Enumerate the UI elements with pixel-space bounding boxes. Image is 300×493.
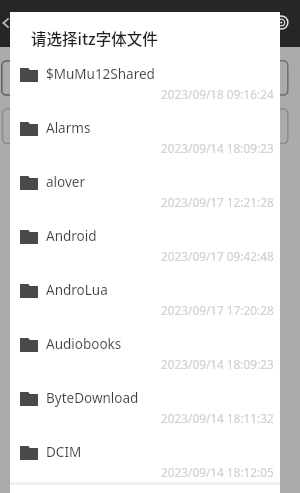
staticText: 2023/09/17 09:42:48: [161, 248, 274, 264]
button[interactable]: Account: [270, 11, 293, 34]
staticText: 2023/09/14 18:11:32: [161, 410, 274, 426]
staticText: DCIM: [46, 443, 82, 461]
staticText: 2023/09/14 18:09:23: [161, 356, 274, 372]
staticText: Android: [46, 227, 97, 245]
button[interactable]: alover: [10, 169, 280, 223]
staticText: 2023/09/14 18:09:23: [161, 140, 274, 156]
button[interactable]: ByteDownload: [10, 385, 280, 439]
staticText: Audiobooks: [46, 335, 122, 353]
staticText: 请选择itz字体文件: [31, 27, 158, 49]
staticText: 2023/09/17 12:21:28: [161, 194, 274, 210]
button[interactable]: AndroLua: [10, 277, 280, 331]
button[interactable]: DCIM: [10, 439, 280, 493]
button[interactable]: $MuMu12Shared: [10, 61, 280, 115]
button[interactable]: Alarms: [10, 115, 280, 169]
staticText: ByteDownload: [46, 389, 139, 407]
staticText: 2023/09/18 09:16:24: [161, 86, 274, 102]
staticText: alover: [46, 173, 86, 191]
staticText: $MuMu12Shared: [46, 65, 155, 83]
staticText: 2023/09/17 17:20:28: [161, 302, 274, 318]
staticText: AndroLua: [46, 281, 108, 299]
staticText: 2023/09/14 18:12:05: [161, 464, 274, 480]
staticText: Alarms: [46, 119, 91, 137]
button[interactable]: Audiobooks: [10, 331, 280, 385]
button[interactable]: Android: [10, 223, 280, 277]
button[interactable]: Back: [0, 12, 17, 34]
